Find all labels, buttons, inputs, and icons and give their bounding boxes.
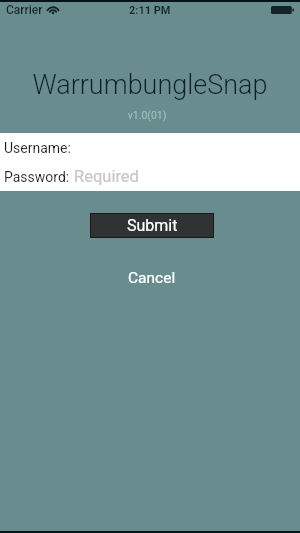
button[interactable]: Cancel xyxy=(112,265,192,291)
staticText: WarrumbungleSnap xyxy=(0,69,300,101)
staticText: 2:11 PM xyxy=(129,4,171,17)
staticText: Required xyxy=(74,167,139,186)
button[interactable]: Password: xyxy=(0,162,300,191)
button[interactable]: Submit xyxy=(90,213,214,238)
staticText: Password: xyxy=(4,169,70,185)
other: Wi-Fi xyxy=(47,6,59,14)
staticText: Cancel xyxy=(128,269,176,287)
staticText: v1.0(01) xyxy=(0,109,297,121)
other: Battery xyxy=(271,6,294,14)
staticText: Username: xyxy=(4,140,71,156)
staticText: Carrier xyxy=(6,3,43,17)
button[interactable]: Username: xyxy=(0,133,300,162)
staticText: Submit xyxy=(127,216,178,235)
